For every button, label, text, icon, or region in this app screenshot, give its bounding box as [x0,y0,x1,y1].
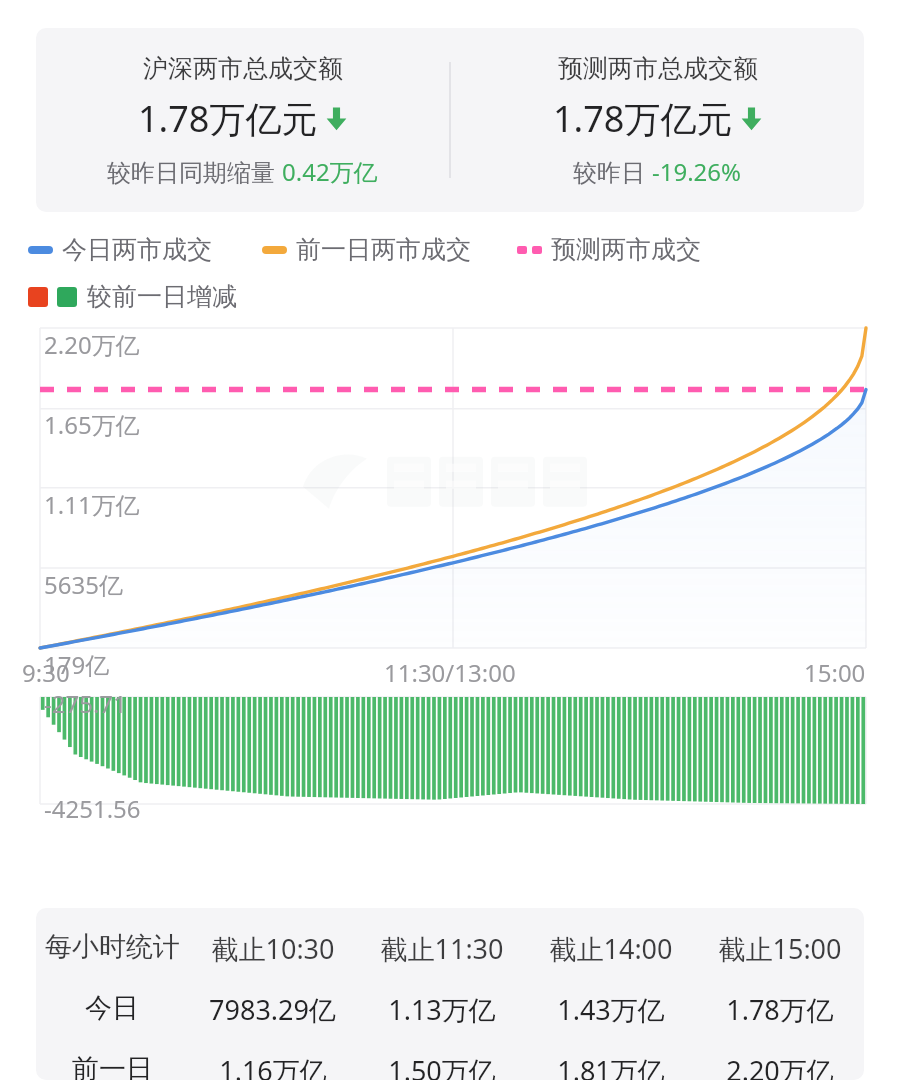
staticText: 前一日两市成交 [296,234,471,265]
staticText: 1.65万亿 [44,408,140,441]
staticText: 179亿 [44,648,110,681]
button[interactable]: 前一日两市成交 [262,234,471,265]
staticText: 前一日 [72,1052,153,1080]
staticText: -4251.56 [44,792,141,825]
staticText: 1.50万亿 [388,1052,496,1080]
staticText: 15:00 [804,656,866,689]
staticText: 预测两市总成交额 [558,53,758,84]
staticText: 9:30 [22,656,70,689]
other: 下降 [741,106,762,131]
staticText: 较前一日增减 [87,281,237,312]
staticText: -19.26% [652,155,742,188]
staticText: 0.42万亿 [282,155,378,188]
staticText: 1.11万亿 [44,488,140,521]
other: 下降 [326,106,347,131]
staticText: 沪深两市总成交额 [143,53,343,84]
staticText: 7983.29亿 [209,991,336,1028]
button[interactable]: 预测两市总成交额 [451,28,864,212]
staticText: 每小时统计 [45,930,180,964]
staticText: 1.43万亿 [557,991,665,1028]
staticText: 较昨日 [573,155,652,188]
staticText: 截止10:30 [211,930,335,967]
staticText: 1.78万亿元 [138,94,318,143]
button[interactable]: 每小时统计 [36,908,864,1080]
staticText: 11:30/13:00 [384,656,516,689]
button[interactable]: 预测两市成交 [517,234,701,265]
button[interactable]: 今日两市成交 [28,234,212,265]
staticText: -275.71 [44,687,127,720]
button[interactable]: 沪深两市总成交额 [36,28,864,212]
staticText: 1.78万亿 [726,991,834,1028]
staticText: 截止14:00 [549,930,673,967]
staticText: 预测两市成交 [551,234,701,265]
button[interactable]: 沪深两市总成交额 [36,28,449,212]
button[interactable]: 2.20万亿 [0,312,900,882]
staticText: 今日两市成交 [62,234,212,265]
staticText: 5635亿 [44,568,123,601]
staticText: 2.20万亿 [44,328,140,361]
staticText: 1.16万亿 [219,1052,327,1080]
staticText: 今日 [85,991,139,1025]
staticText: 截止11:30 [380,930,504,967]
staticText: 较昨日同期缩量 [107,155,282,188]
staticText: 1.78万亿元 [553,94,733,143]
staticText: 2.20万亿 [726,1052,834,1080]
staticText: 1.13万亿 [388,991,496,1028]
staticText: 截止15:00 [718,930,842,967]
button[interactable]: 较前一日增减 [28,281,237,312]
staticText: 1.81万亿 [557,1052,665,1080]
